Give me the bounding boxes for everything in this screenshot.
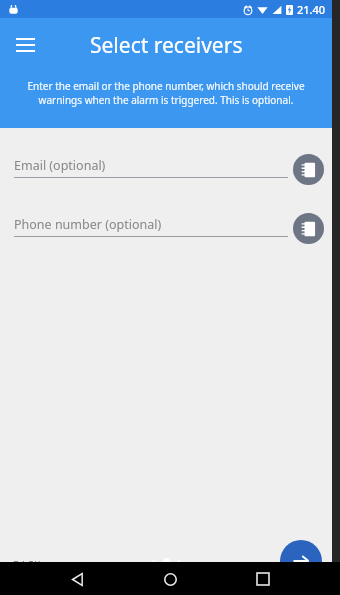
button[interactable]: Next — [280, 540, 322, 582]
button[interactable]: BACK — [13, 558, 41, 572]
staticText: BACK — [13, 558, 41, 572]
staticText: Email (optional) — [14, 157, 106, 174]
button[interactable]: Pick email contact — [293, 154, 324, 185]
staticText: Select receivers — [90, 31, 243, 60]
staticText: 21.40 — [297, 2, 326, 17]
staticText: Enter the email or the phone number, whi… — [16, 79, 316, 107]
button[interactable]: Home — [155, 564, 185, 594]
button[interactable]: Open navigation menu — [8, 28, 42, 62]
staticText: Phone number (optional) — [14, 216, 162, 233]
button[interactable]: Recent apps — [248, 564, 278, 594]
button[interactable]: Back — [62, 564, 92, 594]
button[interactable]: Pick phone contact — [293, 213, 324, 244]
